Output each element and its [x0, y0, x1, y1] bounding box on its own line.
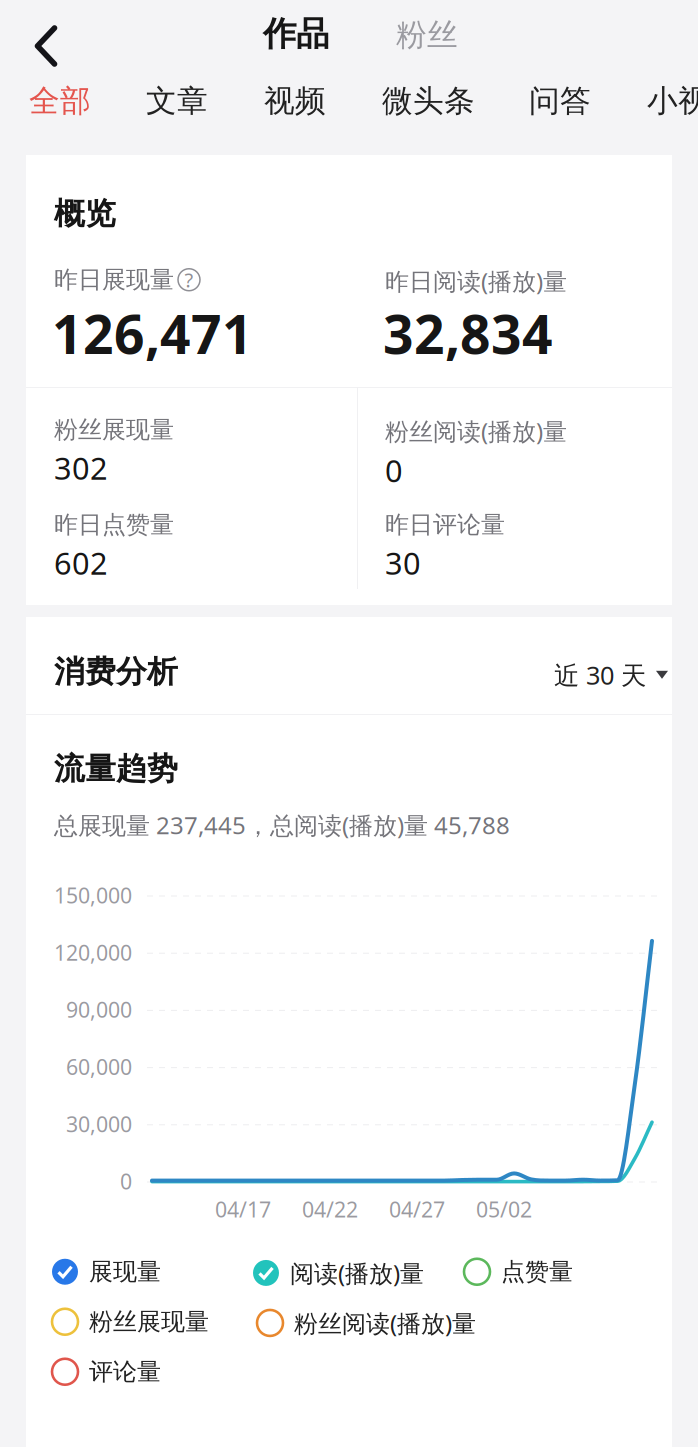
staticText: 昨日阅读(播放)量	[385, 265, 567, 297]
staticText: 昨日评论量	[385, 510, 505, 539]
button[interactable]: 阅读(播放)量	[253, 1257, 424, 1289]
staticText: 粉丝	[396, 16, 458, 54]
button[interactable]: Back	[9, 13, 83, 79]
staticText: 302	[54, 447, 108, 488]
staticText: 粉丝阅读(播放)量	[294, 1307, 476, 1339]
button[interactable]: 点赞量	[464, 1257, 573, 1286]
staticText: 昨日展现量	[54, 265, 174, 294]
button[interactable]: 文章	[146, 64, 208, 138]
staticText: 32,834	[383, 298, 553, 369]
staticText: 30	[385, 542, 421, 583]
staticText: 展现量	[89, 1257, 161, 1286]
staticText: 总展现量 237,445，总阅读(播放)量 45,788	[54, 809, 510, 841]
staticText: 120,000	[54, 938, 132, 966]
staticText: 概览	[54, 195, 116, 233]
staticText: 04/27	[389, 1195, 445, 1223]
staticText: 0	[120, 1167, 132, 1195]
button[interactable]: 全部	[29, 64, 91, 138]
staticText: ?	[184, 266, 193, 293]
staticText: 602	[54, 542, 108, 583]
staticText: 粉丝阅读(播放)量	[385, 415, 567, 447]
staticText: 作品	[263, 13, 329, 54]
button[interactable]: 视频	[264, 64, 326, 138]
staticText: 粉丝展现量	[89, 1307, 209, 1336]
staticText: 05/02	[476, 1195, 532, 1223]
staticText: 近 30 天	[554, 658, 646, 692]
staticText: 126,471	[52, 298, 253, 369]
staticText: 90,000	[66, 995, 132, 1024]
staticText: 点赞量	[501, 1257, 573, 1286]
button[interactable]: 粉丝阅读(播放)量	[257, 1307, 476, 1339]
staticText: 问答	[529, 82, 591, 120]
staticText: 昨日点赞量	[54, 510, 174, 539]
button[interactable]: 评论量	[52, 1357, 161, 1386]
staticText: 150,000	[54, 881, 132, 909]
staticText: 消费分析	[54, 653, 178, 691]
button[interactable]: 小视	[647, 64, 698, 138]
staticText: 0	[385, 450, 403, 491]
button[interactable]: 展现量	[52, 1257, 161, 1286]
staticText: 微头条	[382, 82, 475, 120]
staticText: 流量趋势	[54, 750, 178, 788]
staticText: 评论量	[89, 1357, 161, 1386]
staticText: 04/17	[215, 1195, 271, 1223]
staticText: 全部	[29, 82, 91, 120]
button[interactable]: 近 30 天	[554, 658, 668, 692]
button[interactable]: 微头条	[382, 64, 475, 138]
staticText: 视频	[264, 82, 326, 120]
button[interactable]: 粉丝展现量	[52, 1307, 209, 1336]
staticText: 60,000	[66, 1053, 132, 1081]
button[interactable]: 问答	[529, 64, 591, 138]
button[interactable]: 粉丝	[367, 4, 487, 66]
staticText: 小视	[647, 82, 698, 120]
button[interactable]: 作品	[236, 3, 356, 65]
staticText: 04/22	[302, 1195, 358, 1223]
staticText: 阅读(播放)量	[290, 1257, 424, 1289]
staticText: 文章	[146, 82, 208, 120]
staticText: 30,000	[66, 1110, 132, 1138]
staticText: 粉丝展现量	[54, 415, 174, 444]
